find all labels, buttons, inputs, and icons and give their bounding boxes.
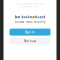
staticText: Save bookmarks and <box>14 15 45 19</box>
staticText: browse more securely <box>15 20 45 24</box>
button[interactable]: Sign in <box>9 29 50 36</box>
staticText: across all of your devices <box>21 6 39 8</box>
staticText: Not now <box>24 39 36 43</box>
button[interactable]: Not now <box>9 38 50 45</box>
staticText: Sign in <box>25 30 35 34</box>
